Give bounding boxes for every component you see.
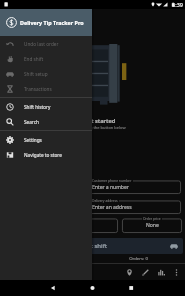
button[interactable]: Statistics <box>155 266 167 278</box>
staticText: 6:39 <box>172 1 183 8</box>
staticText: Settings <box>24 137 42 143</box>
button[interactable]: Tip <box>4 216 118 233</box>
button[interactable]: Shift setup <box>0 66 92 81</box>
button[interactable]: Edit <box>139 266 151 278</box>
staticText: Enter an address <box>92 204 132 211</box>
staticText: Order price <box>143 216 161 220</box>
staticText: Shift setup <box>24 71 48 77</box>
button[interactable]: Start shift <box>4 238 183 254</box>
staticText: Orders: 0 <box>123 255 154 261</box>
button[interactable]: Delivery Tip Tracker Pro <box>0 0 92 36</box>
staticText: Shift history <box>24 104 51 110</box>
staticText: Start a shift using the button below <box>0 125 185 130</box>
button[interactable]: Undo last order <box>0 36 92 51</box>
staticText: End shift <box>24 56 44 62</box>
button[interactable]: Navigate to store <box>123 266 135 278</box>
button[interactable]: Shift history <box>0 99 92 114</box>
staticText: Start shift <box>79 242 108 250</box>
button[interactable]: Transactions <box>0 81 92 96</box>
staticText: Let's get started <box>0 117 185 125</box>
staticText: Search <box>24 119 39 125</box>
button[interactable]: Customer phone number <box>4 178 181 194</box>
button[interactable]: Delivery address <box>4 198 181 214</box>
button[interactable]: Navigate to store <box>0 147 92 162</box>
button[interactable]: End shift <box>0 51 92 66</box>
button[interactable]: More options <box>170 266 182 278</box>
staticText: Delivery Tip Tracker Pro <box>20 19 84 26</box>
staticText: None <box>146 222 159 229</box>
staticText: Undo last order <box>24 41 59 47</box>
staticText: Enter a number <box>92 184 129 191</box>
other: System navigation bar <box>0 280 185 296</box>
staticText: Transactions <box>24 86 52 92</box>
staticText: Navigate to store <box>24 152 62 158</box>
button[interactable]: Settings <box>0 132 92 147</box>
staticText: Customer phone number <box>92 178 132 182</box>
button[interactable]: Search <box>0 114 92 129</box>
button[interactable]: Order price <box>122 216 182 233</box>
staticText: Delivery address <box>92 198 118 202</box>
